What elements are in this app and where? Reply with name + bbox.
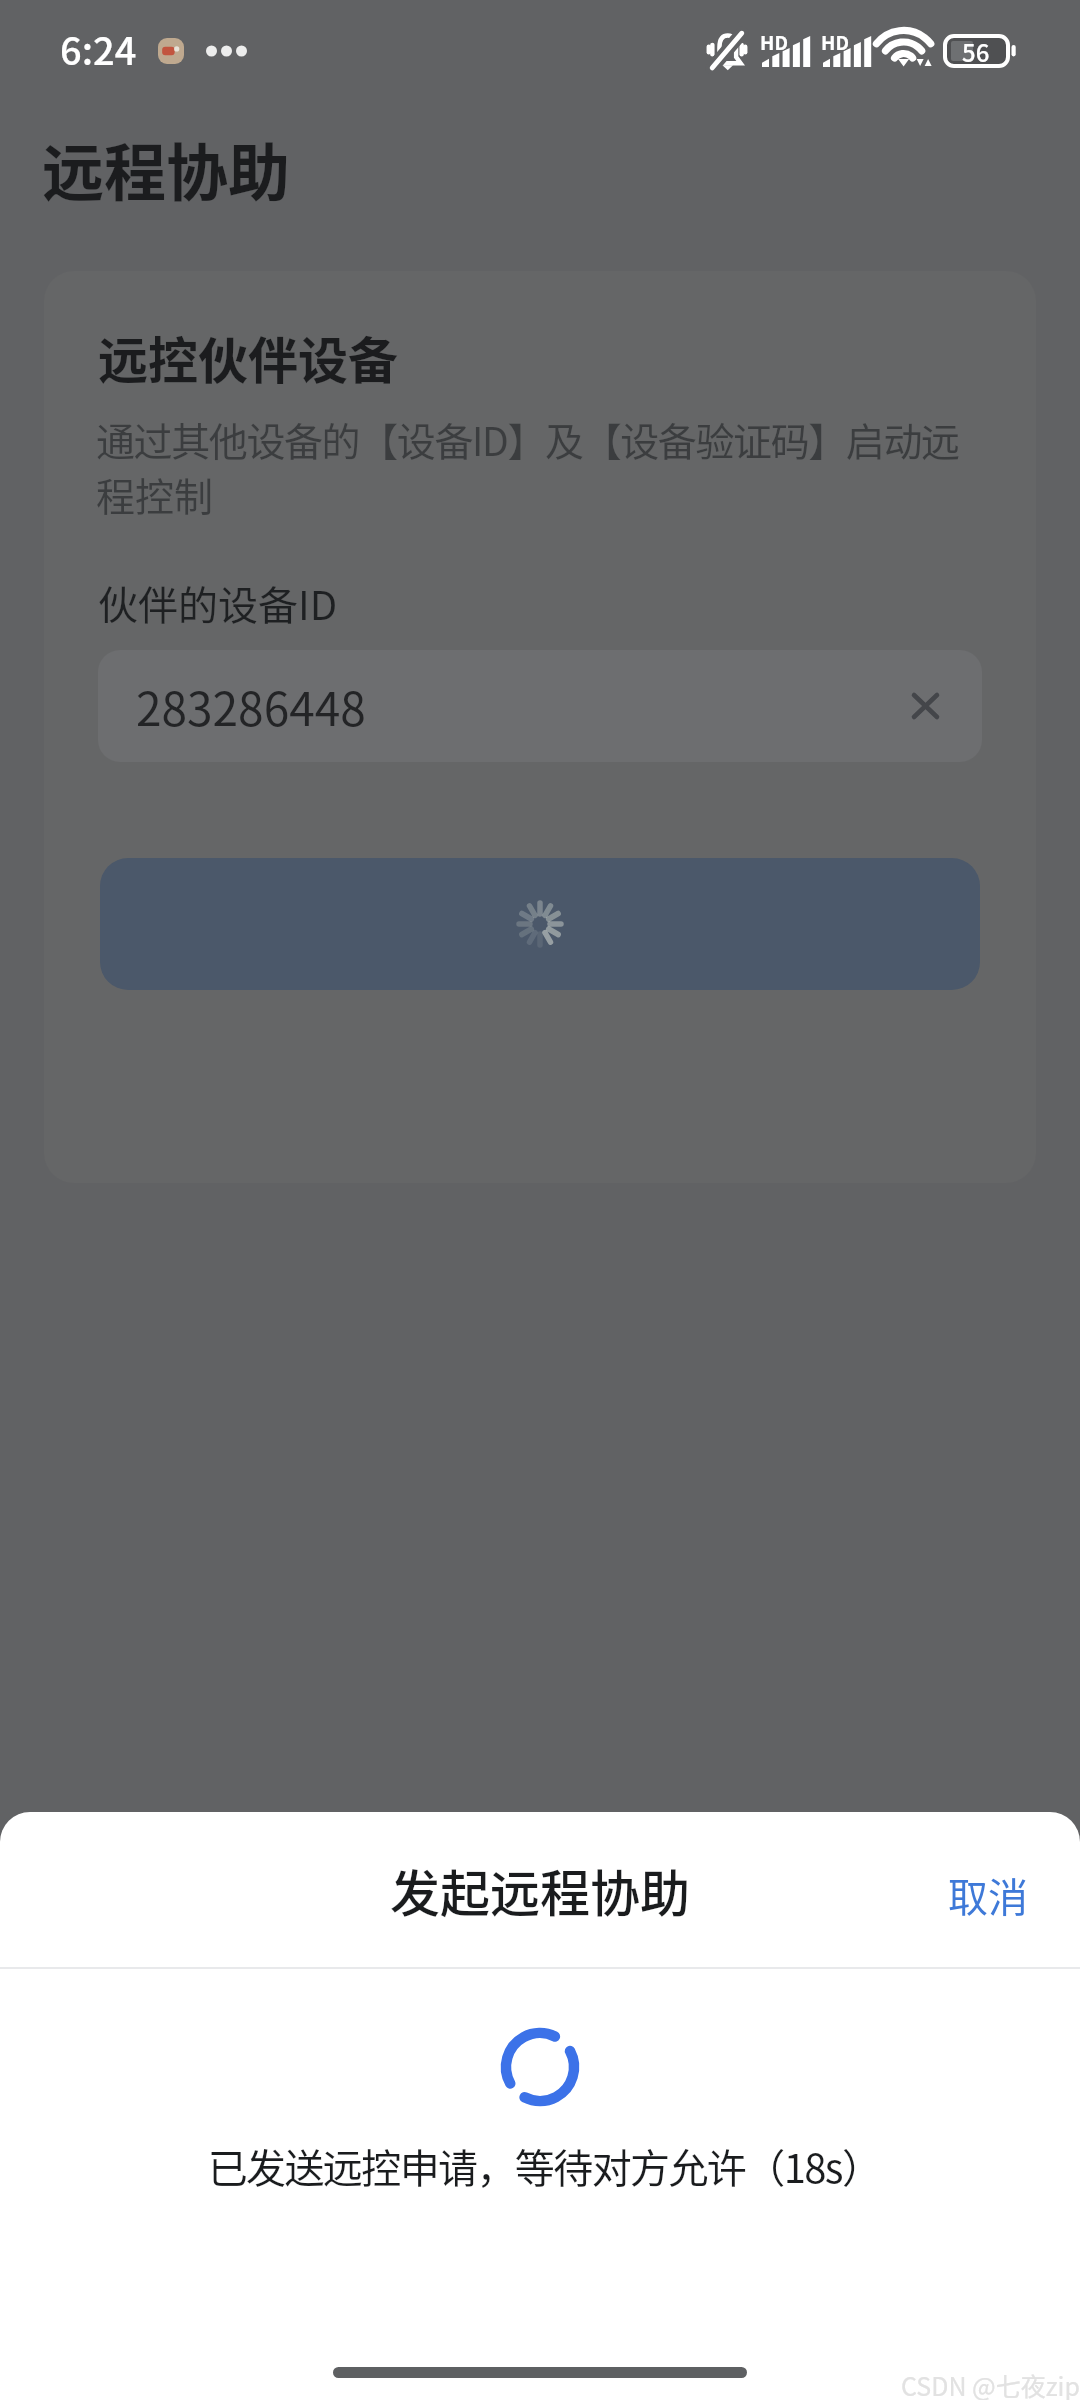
- button[interactable]: 283286448: [98, 650, 982, 762]
- staticText: 取消: [948, 1866, 1028, 1924]
- staticText: 程控制: [96, 466, 214, 522]
- staticText: 56: [962, 34, 990, 64]
- button[interactable]: 取消: [920, 1837, 1060, 1937]
- staticText: 远程协助: [42, 124, 291, 214]
- staticText: HD: [760, 28, 788, 56]
- staticText: 通过其他设备的【设备ID】及【设备验证码】启动远: [96, 411, 959, 467]
- staticText: HD: [821, 28, 849, 56]
- staticText: 已发送远控申请，等待对方允许（18s）: [4, 2137, 1080, 2195]
- button[interactable]: Connecting: [100, 858, 980, 990]
- staticText: 远控伙伴设备: [98, 321, 398, 393]
- staticText: 283286448: [136, 673, 366, 740]
- staticText: 伙伴的设备ID: [98, 574, 338, 632]
- staticText: 发起远程协助: [0, 1854, 1080, 1926]
- staticText: 6:24: [60, 21, 137, 76]
- staticText: CSDN @七夜zippoe: [901, 2367, 1080, 2400]
- button[interactable]: Clear device ID: [895, 676, 955, 736]
